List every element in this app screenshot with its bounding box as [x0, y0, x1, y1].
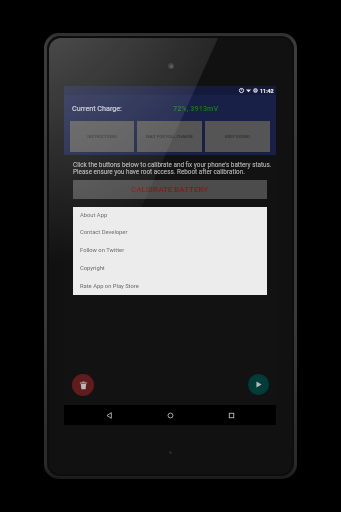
button[interactable]: Start calibration [248, 374, 269, 395]
button[interactable]: Contact Developer [73, 224, 267, 241]
button[interactable]: Reset battery stats [72, 374, 94, 396]
button[interactable]: BEEP SOUND [205, 121, 270, 152]
staticText: INSTRUCTIONS [87, 134, 117, 139]
staticText: Contact Developer [80, 229, 128, 236]
staticText: Click the buttons below to calibrate and… [73, 161, 272, 176]
staticText: Current Charge: [72, 104, 122, 112]
button[interactable]: Follow on Twitter [73, 241, 267, 259]
staticText: WAIT FOR FULL CHARGE [146, 134, 193, 139]
button[interactable]: Rate App on Play Store [73, 277, 267, 295]
staticText: 72%, 3913mV [173, 104, 219, 113]
button[interactable]: Back [99, 405, 119, 425]
staticText: Follow on Twitter [80, 247, 125, 254]
button[interactable]: INSTRUCTIONS [70, 121, 134, 152]
button[interactable]: Home [160, 405, 180, 425]
staticText: CALIBRATE BATTERY [131, 185, 209, 194]
button[interactable]: About App [73, 207, 267, 224]
staticText: Copyright [80, 265, 105, 272]
staticText: 11:42 [260, 88, 274, 94]
button[interactable]: CALIBRATE BATTERY [73, 180, 267, 199]
staticText: Rate App on Play Store [80, 283, 139, 290]
staticText: About App [80, 212, 108, 219]
staticText: BEEP SOUND [225, 134, 250, 139]
button[interactable]: Copyright [73, 259, 267, 277]
button[interactable]: WAIT FOR FULL CHARGE [137, 121, 202, 152]
button[interactable]: Recent apps [221, 405, 241, 425]
